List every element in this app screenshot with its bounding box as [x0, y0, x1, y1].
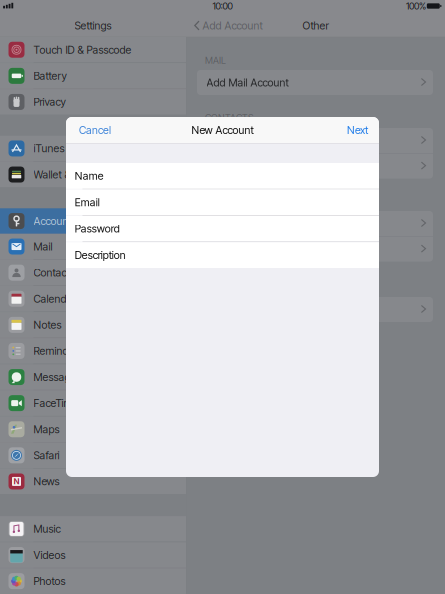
button[interactable]: Privacy: [0, 89, 186, 115]
button[interactable]: FaceTime: [0, 390, 186, 416]
staticText: Next: [347, 123, 368, 136]
staticText: Display Order: [206, 160, 267, 172]
button[interactable]: Contacts: [0, 260, 186, 285]
button[interactable]: Password: [66, 216, 379, 242]
button[interactable]: Default Account: [197, 297, 433, 322]
button[interactable]: Accounts & Passwords: [0, 208, 186, 234]
staticText: Messages: [33, 371, 81, 383]
staticText: 10:00: [212, 0, 232, 12]
button[interactable]: Calendar: [0, 286, 186, 311]
button[interactable]: Email: [66, 189, 379, 215]
staticText: FaceTime: [33, 397, 78, 410]
button[interactable]: Time Zone Override: [197, 211, 433, 236]
button[interactable]: Mail: [0, 234, 186, 259]
button[interactable]: Wallet & Apple Pay: [0, 162, 186, 187]
staticText: MAIL: [205, 55, 226, 66]
button[interactable]: Cancel: [66, 117, 124, 143]
staticText: Safari: [33, 449, 59, 462]
staticText: Mail: [33, 240, 52, 253]
button[interactable]: Touch ID & Passcode: [0, 37, 186, 62]
staticText: 100%: [406, 0, 426, 12]
staticText: Calendar: [33, 292, 75, 305]
staticText: N: [13, 477, 19, 486]
staticText: Battery: [33, 69, 66, 82]
staticText: News: [33, 475, 59, 488]
staticText: CONTACTS: [205, 112, 254, 123]
button[interactable]: Description: [66, 242, 379, 268]
staticText: Notes: [33, 318, 61, 331]
staticText: Wallet & Apple Pay: [33, 168, 119, 181]
staticText: Privacy: [33, 95, 65, 108]
button[interactable]: Next: [336, 117, 379, 143]
button[interactable]: Sort Order: [197, 128, 433, 153]
button[interactable]: iTunes & App Store: [0, 136, 186, 161]
staticText: Email: [75, 196, 100, 209]
button[interactable]: Reminders: [0, 338, 186, 364]
staticText: Contacts: [33, 266, 74, 279]
staticText: Add Account: [202, 19, 262, 32]
button[interactable]: Name: [66, 163, 379, 189]
staticText: Add Mail Account: [206, 76, 288, 89]
staticText: iTunes & App Store: [33, 142, 122, 155]
button[interactable]: Battery: [0, 63, 186, 89]
staticText: Cancel: [79, 123, 111, 136]
button[interactable]: Messages: [0, 364, 186, 390]
staticText: Maps: [33, 423, 59, 436]
staticText: Reminders: [33, 344, 82, 357]
staticText: Accounts & Passwords: [33, 215, 138, 227]
staticText: Description: [75, 249, 126, 261]
staticText: New Account: [191, 123, 253, 136]
staticText: Other: [302, 19, 328, 32]
staticText: Videos: [33, 549, 65, 561]
staticText: Sort Order: [206, 134, 254, 147]
button[interactable]: Maps: [0, 416, 186, 442]
button[interactable]: Alternate Calendars: [197, 237, 433, 262]
button[interactable]: Add Mail Account: [197, 70, 433, 95]
button[interactable]: Videos: [0, 542, 186, 568]
staticText: Photos: [33, 575, 65, 588]
button[interactable]: Music: [0, 516, 186, 542]
staticText: Settings: [74, 19, 111, 32]
staticText: Name: [75, 169, 104, 182]
staticText: Password: [75, 222, 120, 235]
button[interactable]: Photos: [0, 568, 186, 594]
button[interactable]: N: [0, 469, 186, 494]
staticText: Music: [33, 522, 60, 535]
button[interactable]: Display Order: [197, 154, 433, 179]
button[interactable]: Safari: [0, 443, 186, 468]
button[interactable]: Notes: [0, 312, 186, 338]
staticText: Touch ID & Passcode: [33, 43, 131, 56]
button[interactable]: Add Account: [191, 14, 265, 37]
